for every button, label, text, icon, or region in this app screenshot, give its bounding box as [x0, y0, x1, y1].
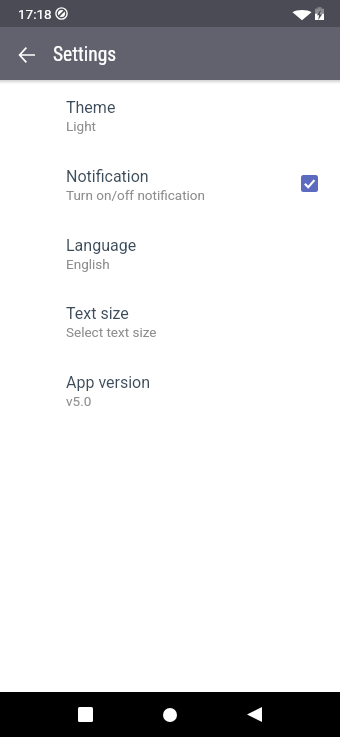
staticText: Notification — [66, 167, 149, 186]
button[interactable]: Recent apps — [43, 692, 127, 737]
staticText: Theme — [66, 98, 116, 117]
staticText: Settings — [53, 43, 117, 66]
staticText: 17:18 — [18, 6, 52, 22]
staticText: App version — [66, 373, 151, 392]
button[interactable]: App version — [0, 362, 340, 431]
button[interactable]: Back — [212, 692, 296, 737]
staticText: Text size — [66, 304, 129, 323]
button[interactable]: Toggle notification — [301, 175, 318, 192]
button[interactable]: Text size — [0, 293, 340, 362]
staticText: Select text size — [66, 324, 157, 340]
staticText: Language — [66, 236, 137, 255]
staticText: Light — [66, 118, 96, 134]
button[interactable]: Language — [0, 225, 340, 294]
staticText: English — [66, 256, 110, 272]
button[interactable]: Notification — [0, 156, 340, 225]
button[interactable]: Back — [10, 38, 43, 71]
button[interactable]: Theme — [0, 87, 340, 156]
button[interactable]: Home — [128, 692, 212, 737]
staticText: v5.0 — [66, 393, 92, 409]
staticText: Turn on/off notification — [66, 187, 206, 203]
